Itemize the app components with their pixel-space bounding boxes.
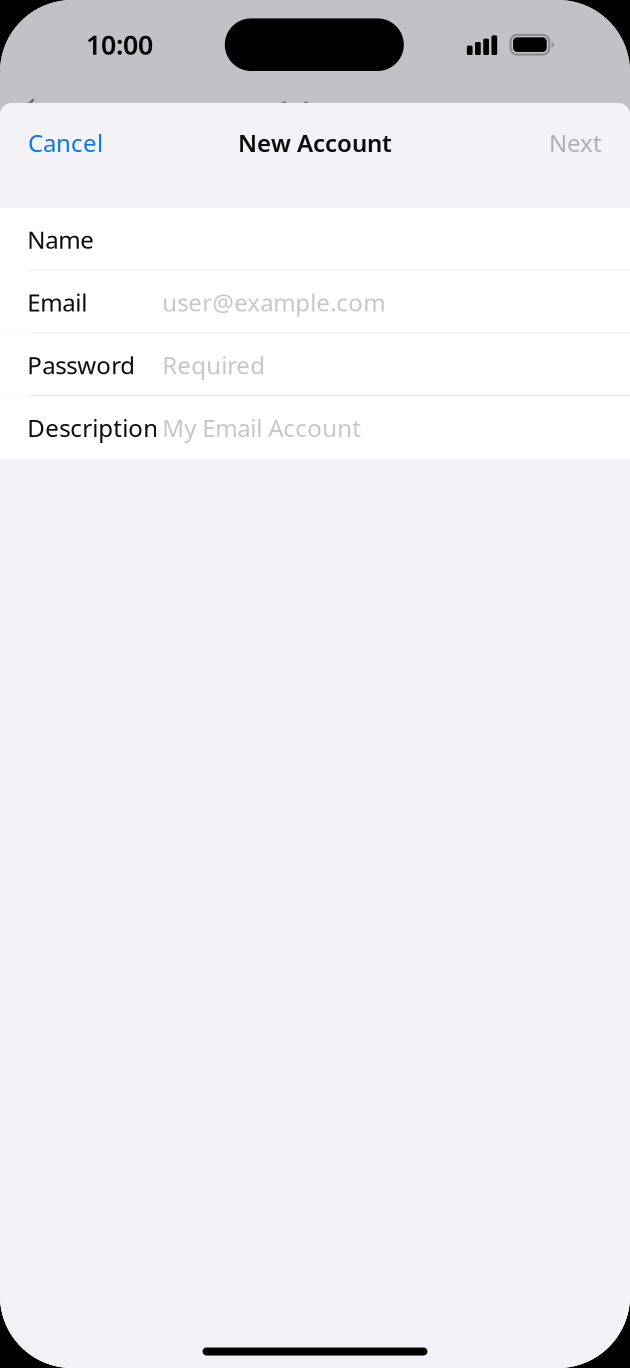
staticText: Description [27,412,158,444]
staticText: Next [549,127,602,159]
button[interactable]: Next [506,105,630,181]
button[interactable]: Name [0,208,630,271]
staticText: Required [162,349,265,381]
button[interactable]: Password [0,333,630,396]
button[interactable]: Email [0,271,630,334]
button[interactable]: Cancel [0,105,144,181]
staticText: New Account [238,127,392,159]
button[interactable]: Description [0,396,630,459]
staticText: Name [27,223,94,255]
staticText: My Email Account [162,412,361,444]
staticText: 10:00 [86,27,153,62]
staticText: Cancel [28,127,103,159]
staticText: Password [27,349,135,381]
staticText: Email [27,286,87,318]
staticText: user@example.com [162,286,385,318]
